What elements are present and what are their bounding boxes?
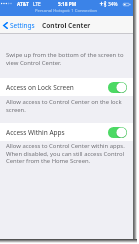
button[interactable]: Access Within Apps [0, 123, 133, 141]
staticText: Control Center [42, 21, 91, 30]
button[interactable]: Toggle on [108, 127, 127, 138]
button[interactable]: Settings [0, 19, 39, 32]
staticText: Settings [10, 21, 35, 30]
staticText: Personal Hotspot: 1 Connection [35, 8, 98, 14]
staticText: Allow access to Control Center within ap… [6, 142, 126, 164]
button[interactable]: Access on Lock Screen [0, 78, 133, 96]
staticText: 5:18 PM [58, 1, 77, 8]
staticText: Allow access to Control Center on the lo… [6, 98, 126, 113]
staticText: Access on Lock Screen [6, 83, 74, 92]
staticText: LTE [33, 1, 41, 8]
staticText: Access Within Apps [6, 128, 65, 137]
button[interactable]: Toggle on [108, 82, 127, 93]
staticText: AT&T [17, 1, 29, 8]
staticText: Swipe up from the bottom of the screen t… [6, 51, 126, 66]
staticText: 34% [108, 1, 118, 8]
